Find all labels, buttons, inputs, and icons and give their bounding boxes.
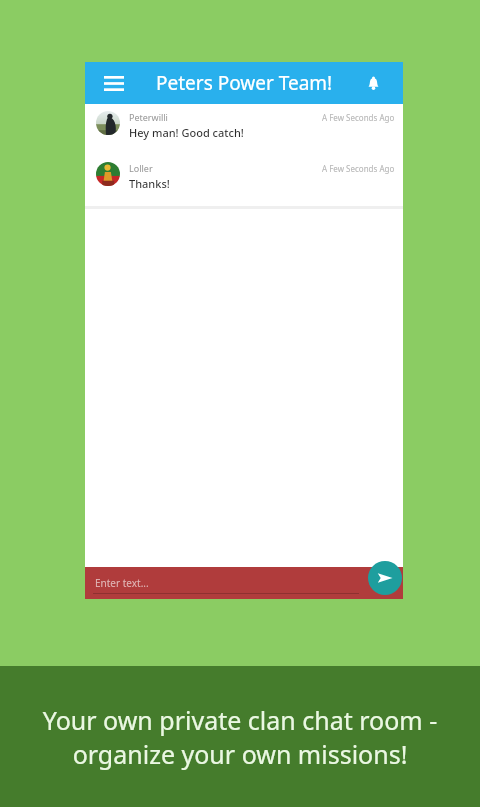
staticText: Thanks!	[129, 176, 170, 191]
staticText: Loller	[129, 162, 153, 174]
button[interactable]: Notifications	[359, 69, 387, 97]
button[interactable]: Send	[368, 561, 402, 595]
button[interactable]: Loller	[85, 155, 403, 206]
staticText: Hey man! Good catch!	[129, 125, 244, 140]
staticText: Peters Power Team!	[156, 70, 333, 96]
button[interactable]: Menu	[99, 68, 129, 98]
staticText: Enter text...	[95, 576, 149, 590]
button[interactable]: Peterwilli	[85, 104, 403, 155]
staticText: A Few Seconds Ago	[322, 112, 395, 123]
staticText: Peterwilli	[129, 111, 168, 123]
staticText: A Few Seconds Ago	[322, 163, 395, 174]
button[interactable]: Enter text...	[85, 567, 403, 599]
staticText: Your own private clan chat room - organi…	[38, 703, 442, 771]
